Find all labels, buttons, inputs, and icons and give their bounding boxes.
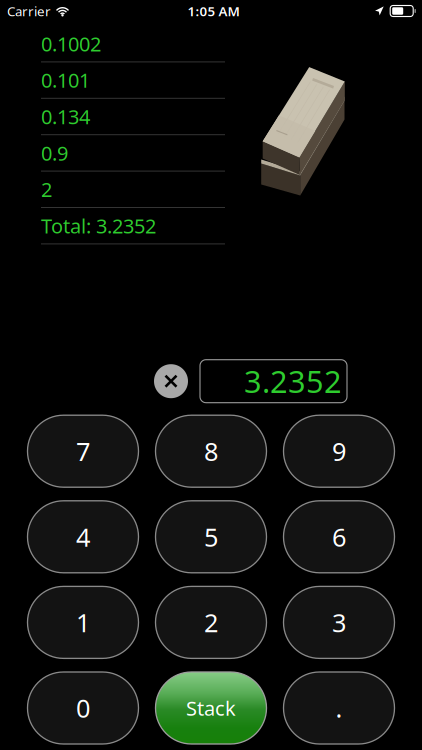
staticText: 2: [41, 176, 52, 203]
staticText: 0.134: [41, 103, 90, 130]
button[interactable]: 0: [27, 672, 138, 744]
staticText: 3: [332, 606, 346, 639]
button[interactable]: 2: [155, 586, 266, 658]
button[interactable]: 8: [155, 415, 266, 487]
staticText: 6: [332, 520, 346, 554]
button[interactable]: 3: [283, 586, 394, 658]
button[interactable]: 4: [27, 501, 138, 573]
staticText: Carrier: [7, 2, 51, 20]
button[interactable]: 5: [155, 501, 266, 573]
staticText: 1:05 AM: [187, 2, 239, 20]
button[interactable]: .: [283, 672, 394, 744]
staticText: Stack: [186, 695, 236, 721]
button[interactable]: 6: [283, 501, 394, 573]
staticText: .: [335, 691, 342, 725]
staticText: 7: [76, 434, 90, 468]
staticText: 4: [76, 520, 90, 554]
staticText: 0.9: [41, 140, 68, 166]
staticText: 0.1002: [41, 30, 101, 57]
button[interactable]: 1: [27, 586, 138, 658]
staticText: Total: 3.2352: [41, 212, 156, 239]
button[interactable]: Clear: [154, 364, 188, 398]
staticText: 8: [204, 434, 218, 468]
button[interactable]: 9: [283, 415, 394, 487]
staticText: 0.101: [41, 67, 90, 93]
button[interactable]: Stack: [155, 672, 266, 744]
staticText: 9: [332, 434, 346, 468]
staticText: 3.2352: [244, 361, 342, 401]
staticText: 5: [204, 520, 218, 554]
staticText: 1: [76, 606, 90, 639]
staticText: 2: [204, 606, 218, 639]
button[interactable]: 7: [27, 415, 138, 487]
staticText: 0: [76, 691, 90, 725]
